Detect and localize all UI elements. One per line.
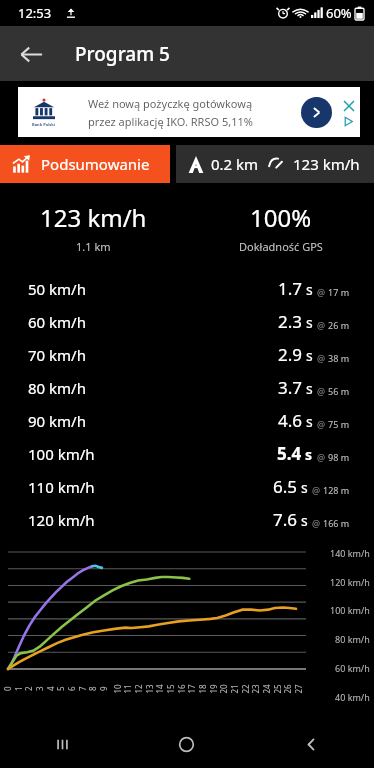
staticText: Podsumowanie <box>41 154 150 174</box>
staticText: 5.4 <box>277 442 302 465</box>
button[interactable]: 110 km/h <box>0 470 374 503</box>
staticText: 7 <box>77 686 88 691</box>
staticText: 140 km/h <box>330 547 370 559</box>
staticText: 100% <box>250 201 312 234</box>
button[interactable]: Back <box>249 720 374 768</box>
staticText: 0.2 km <box>211 154 259 174</box>
button[interactable]: Podsumowanie <box>0 145 170 183</box>
staticText: 166 m <box>323 517 350 529</box>
staticText: przez aplikację IKO. RRSO 5,11% <box>88 114 253 129</box>
staticText: s <box>306 280 313 299</box>
staticText: 123 km/h <box>40 201 147 234</box>
button[interactable]: 120 km/h <box>0 503 374 536</box>
button[interactable]: Back <box>8 31 54 77</box>
button[interactable]: 90 km/h <box>0 404 374 437</box>
staticText: 70 km/h <box>28 345 86 365</box>
staticText: 12:53 <box>18 4 52 22</box>
staticText: 56 m <box>328 385 350 397</box>
button[interactable]: 80 km/h <box>0 371 374 404</box>
staticText: @ <box>312 484 321 496</box>
staticText: 100 km/h <box>330 604 370 616</box>
staticText: 11 <box>121 683 132 693</box>
staticText: 2 <box>23 686 34 691</box>
staticText: 21 <box>228 683 239 693</box>
staticText: Bank Polski <box>32 122 56 127</box>
staticText: 6 <box>66 686 77 691</box>
staticText: @ <box>317 418 326 430</box>
staticText: s <box>306 412 313 431</box>
staticText: @ <box>317 352 326 364</box>
staticText: 19 <box>207 683 218 693</box>
staticText: 60% <box>326 4 352 22</box>
staticText: 1.7 <box>278 277 303 300</box>
staticText: 16 <box>175 683 186 693</box>
staticText: 6.5 <box>273 475 298 498</box>
staticText: 20 <box>217 683 228 693</box>
staticText: 12 <box>132 683 143 693</box>
staticText: 120 km/h <box>28 510 95 530</box>
staticText: 18 <box>196 683 207 693</box>
staticText: 7.6 <box>273 508 298 531</box>
staticText: 120 km/h <box>330 576 370 588</box>
staticText: Weź nową pożyczkę gotówkową <box>88 96 253 111</box>
staticText: 3.7 <box>278 376 303 399</box>
staticText: s <box>301 478 308 497</box>
staticText: 2.3 <box>278 310 303 333</box>
staticText: 90 km/h <box>28 411 86 431</box>
staticText: 15 <box>164 683 175 693</box>
staticText: s <box>306 379 313 398</box>
staticText: 26 <box>281 683 292 693</box>
staticText: 98 m <box>328 451 350 463</box>
staticText: 4 <box>45 686 56 691</box>
staticText: 80 km/h <box>28 378 86 398</box>
staticText: 9 <box>98 686 109 691</box>
staticText: 4.6 <box>278 409 303 432</box>
button[interactable]: 50 km/h <box>0 272 374 305</box>
staticText: 60 km/h <box>335 662 370 674</box>
staticText: @ <box>317 286 326 298</box>
staticText: s <box>305 445 313 464</box>
staticText: 24 <box>260 683 271 693</box>
staticText: s <box>301 511 308 530</box>
staticText: 38 m <box>328 352 350 364</box>
staticText: 75 m <box>328 418 350 430</box>
staticText: 22 <box>239 683 250 693</box>
button[interactable]: 70 km/h <box>0 338 374 371</box>
button[interactable]: Open ad <box>301 97 332 128</box>
staticText: s <box>306 346 313 365</box>
staticText: 17 <box>185 683 196 693</box>
staticText: 23 <box>249 683 260 693</box>
staticText: s <box>306 313 313 332</box>
staticText: 128 m <box>323 484 350 496</box>
staticText: 8 <box>87 686 98 691</box>
staticText: @ <box>317 385 326 397</box>
button[interactable]: 0.2 km <box>176 145 374 183</box>
button[interactable]: Bank Polski <box>18 87 360 137</box>
staticText: 14 <box>153 683 164 693</box>
staticText: 60 km/h <box>28 312 86 332</box>
staticText: 2.9 <box>278 343 303 366</box>
button[interactable]: 60 km/h <box>0 305 374 338</box>
button[interactable]: Close ad <box>341 98 356 113</box>
staticText: 17 m <box>328 286 350 298</box>
staticText: 40 km/h <box>335 691 370 703</box>
staticText: 1.1 km <box>76 239 111 254</box>
staticText: @ <box>317 319 326 331</box>
staticText: 27 <box>292 683 303 693</box>
staticText: 123 km/h <box>293 154 360 174</box>
staticText: 50 km/h <box>28 279 86 299</box>
button[interactable]: Recents <box>0 720 124 768</box>
staticText: Dokładność GPS <box>239 239 323 254</box>
staticText: Program 5 <box>75 41 170 67</box>
staticText: 5 <box>55 686 66 691</box>
staticText: 3 <box>34 686 45 691</box>
staticText: 26 m <box>328 319 350 331</box>
staticText: @ <box>317 451 326 463</box>
staticText: 10 <box>111 683 122 693</box>
staticText: 80 km/h <box>335 633 370 645</box>
button[interactable]: 100 km/h <box>0 437 374 470</box>
staticText: @ <box>312 517 321 529</box>
staticText: 13 <box>143 683 154 693</box>
button[interactable]: Home <box>124 720 249 768</box>
